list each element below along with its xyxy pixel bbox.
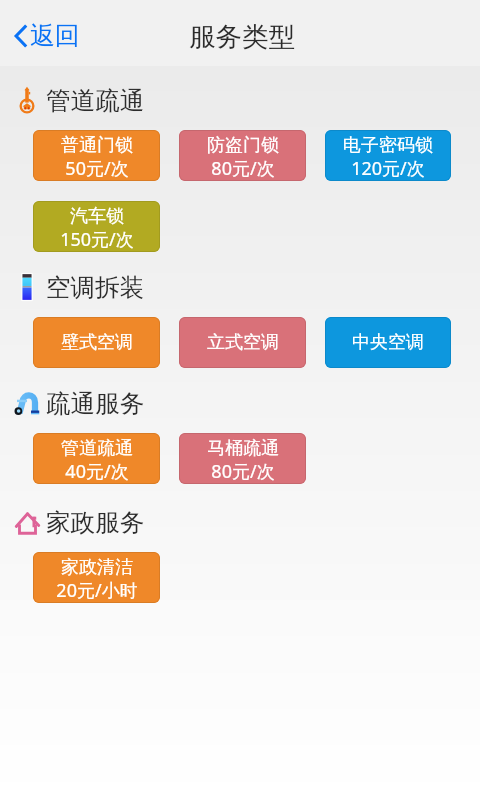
- button[interactable]: 家政清洁 20元/小时: [33, 552, 160, 603]
- button[interactable]: 马桶疏通 80元/次: [179, 433, 306, 484]
- staticText: 服务类型: [189, 20, 295, 53]
- staticText: 立式空调: [207, 331, 279, 354]
- staticText: 返回: [30, 20, 80, 51]
- staticText: 空调拆装: [46, 272, 145, 302]
- button[interactable]: 管道疏通 40元/次: [33, 433, 160, 484]
- staticText: 疏通服务: [46, 388, 145, 418]
- staticText: 家政服务: [46, 507, 145, 537]
- button[interactable]: 普通门锁 50元/次: [33, 130, 160, 181]
- button[interactable]: 返回: [12, 14, 83, 57]
- staticText: 管道疏通: [46, 85, 145, 115]
- button[interactable]: 立式空调: [179, 317, 306, 368]
- button[interactable]: 汽车锁 150元/次: [33, 201, 160, 252]
- staticText: 管道疏通 40元/次: [61, 437, 133, 483]
- staticText: 壁式空调: [61, 331, 133, 354]
- staticText: 电子密码锁 120元/次: [343, 134, 433, 180]
- staticText: 防盗门锁 80元/次: [207, 134, 279, 180]
- staticText: 中央空调: [352, 331, 424, 354]
- other: Housekeeping: [15, 510, 40, 535]
- staticText: 普通门锁 50元/次: [61, 134, 133, 180]
- other: Pipe unclogging: [15, 390, 40, 417]
- other: Air conditioner: [21, 273, 33, 301]
- button[interactable]: 壁式空调: [33, 317, 160, 368]
- staticText: 家政清洁 20元/小时: [56, 556, 138, 602]
- staticText: 汽车锁 150元/次: [60, 205, 134, 251]
- staticText: 马桶疏通 80元/次: [207, 437, 279, 483]
- button[interactable]: 中央空调: [325, 317, 451, 368]
- other: Lock service: [19, 86, 35, 114]
- button[interactable]: 防盗门锁 80元/次: [179, 130, 306, 181]
- button[interactable]: 电子密码锁 120元/次: [325, 130, 451, 181]
